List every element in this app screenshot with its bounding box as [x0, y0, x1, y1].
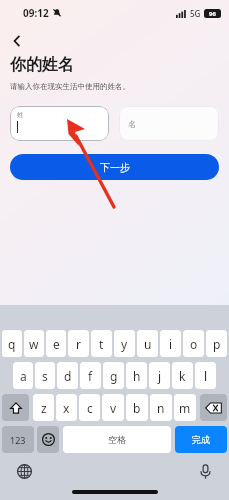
button[interactable]: b	[126, 394, 148, 421]
staticText: c	[87, 400, 93, 416]
button[interactable]: w	[24, 330, 44, 357]
button[interactable]: Backspace	[200, 394, 227, 421]
staticText: 09:12	[23, 6, 49, 20]
button[interactable]: y	[114, 330, 135, 357]
staticText: k	[179, 368, 186, 384]
button[interactable]: 名	[119, 106, 219, 141]
button[interactable]: p	[206, 330, 227, 357]
button[interactable]: e	[46, 330, 66, 357]
button[interactable]: a	[13, 362, 33, 389]
staticText: v	[110, 400, 117, 416]
button[interactable]: x	[56, 394, 77, 421]
button[interactable]: q	[2, 330, 22, 357]
button[interactable]: h	[126, 362, 147, 389]
button[interactable]: Emoji	[37, 426, 59, 453]
button[interactable]: n	[150, 394, 172, 421]
staticText: i	[169, 336, 173, 352]
staticText: f	[88, 368, 93, 384]
button[interactable]: l	[195, 362, 216, 389]
button[interactable]: g	[103, 362, 124, 389]
staticText: 5G	[190, 8, 201, 19]
staticText: 名	[128, 119, 136, 129]
button[interactable]: 完成	[175, 426, 227, 453]
staticText: b	[133, 400, 141, 416]
button[interactable]: Change language	[13, 460, 35, 482]
staticText: 请输入你在现实生活中使用的姓名。	[10, 82, 130, 91]
button[interactable]: i	[160, 330, 181, 357]
button[interactable]: 空格	[63, 426, 171, 453]
button[interactable]: Voice input	[194, 460, 216, 482]
staticText: t	[99, 336, 104, 352]
staticText: a	[20, 368, 27, 384]
staticText: x	[63, 400, 70, 416]
staticText: g	[110, 368, 118, 384]
button[interactable]: c	[79, 394, 100, 421]
button[interactable]: u	[137, 330, 158, 357]
button[interactable]: v	[102, 394, 124, 421]
staticText: 下一步	[100, 161, 130, 174]
button[interactable]: m	[174, 394, 196, 421]
button[interactable]: 123	[2, 426, 34, 453]
button[interactable]: j	[149, 362, 170, 389]
button[interactable]: t	[91, 330, 112, 357]
button[interactable]: z	[33, 394, 54, 421]
staticText: e	[53, 336, 60, 352]
button[interactable]: f	[80, 362, 101, 389]
button[interactable]: Shift	[2, 394, 29, 421]
staticText: p	[213, 336, 221, 352]
staticText: 空格	[108, 434, 126, 445]
button[interactable]: d	[57, 362, 78, 389]
button[interactable]: 姓	[10, 106, 109, 141]
staticText: d	[64, 368, 72, 384]
staticText: q	[8, 336, 16, 352]
button[interactable]: Back	[5, 29, 29, 53]
staticText: 123	[10, 434, 26, 446]
staticText: m	[179, 400, 191, 416]
staticText: o	[190, 336, 198, 352]
button[interactable]: o	[183, 330, 204, 357]
staticText: s	[42, 368, 48, 384]
staticText: 完成	[192, 434, 210, 445]
staticText: h	[133, 368, 141, 384]
staticText: 你的姓名	[10, 55, 74, 75]
staticText: j	[158, 368, 162, 384]
staticText: z	[41, 400, 47, 416]
staticText: w	[29, 336, 39, 352]
staticText: l	[204, 368, 208, 384]
staticText: r	[76, 336, 81, 352]
button[interactable]: k	[172, 362, 193, 389]
staticText: 96	[209, 10, 216, 18]
button[interactable]: 下一步	[10, 154, 219, 180]
button[interactable]: r	[68, 330, 89, 357]
staticText: n	[157, 400, 165, 416]
button[interactable]: s	[35, 362, 55, 389]
staticText: 姓	[17, 111, 23, 119]
staticText: u	[144, 336, 152, 352]
staticText: y	[121, 336, 128, 352]
